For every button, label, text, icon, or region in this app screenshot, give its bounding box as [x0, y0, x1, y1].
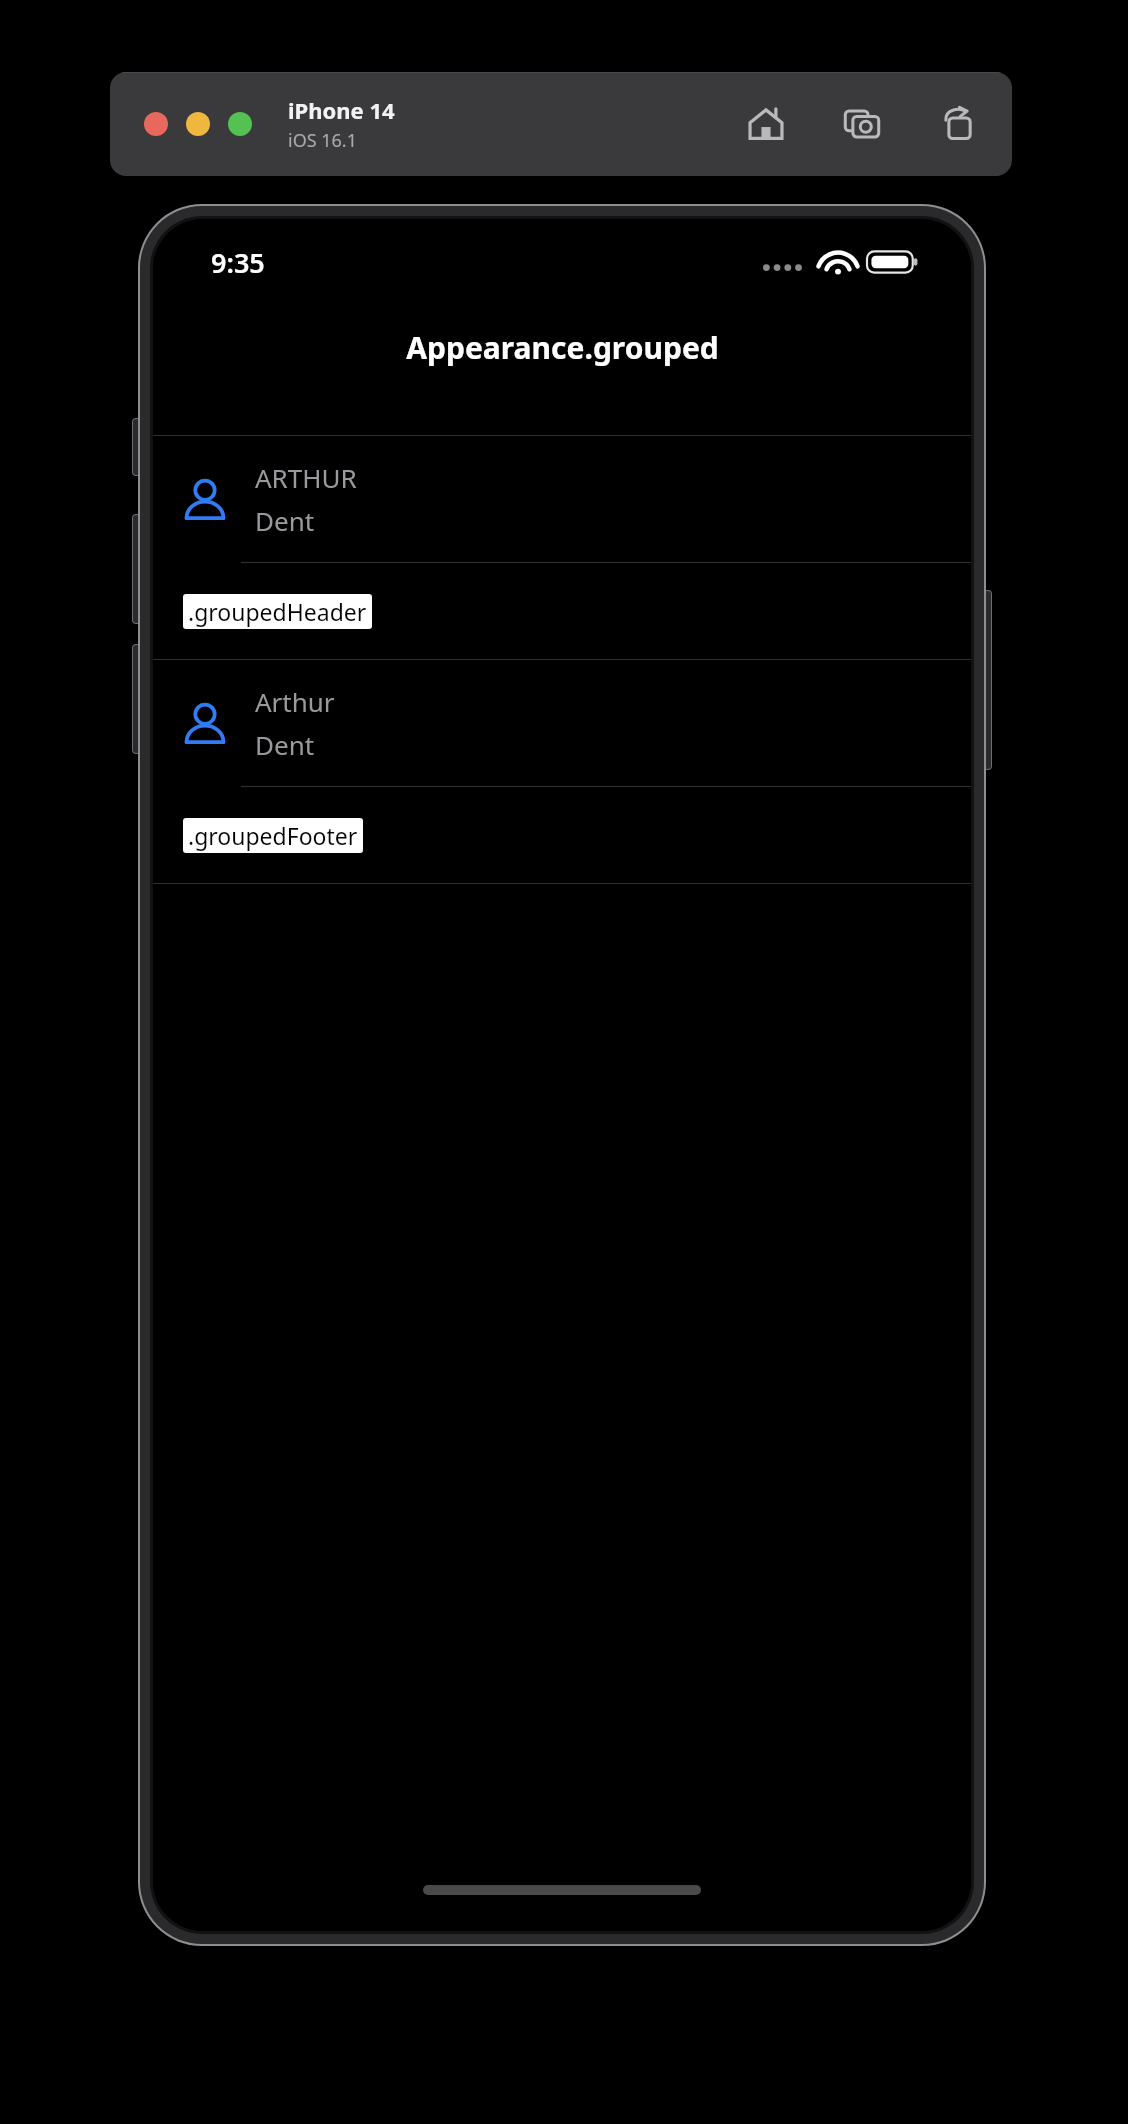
button[interactable]: .groupedFooter	[183, 818, 363, 853]
staticText: Dent	[255, 503, 315, 538]
staticText: Arthur	[255, 684, 335, 719]
button[interactable]: Arthur	[153, 660, 971, 786]
staticText: iOS 16.1	[288, 128, 357, 153]
button[interactable]: Screenshot	[836, 98, 888, 150]
staticText: .groupedHeader	[188, 596, 367, 627]
button[interactable]: Record screen	[932, 98, 984, 150]
button[interactable]: ARTHUR	[153, 436, 971, 562]
staticText: Dent	[255, 727, 315, 762]
staticText: 9:35	[211, 244, 265, 281]
staticText: iPhone 14	[288, 95, 395, 125]
button[interactable]: Zoom	[228, 112, 252, 136]
button[interactable]: Close	[144, 112, 168, 136]
button[interactable]: .groupedHeader	[183, 594, 372, 629]
button[interactable]: Home	[740, 98, 792, 150]
staticText: Appearance.grouped	[406, 327, 719, 368]
staticText: ARTHUR	[255, 460, 357, 495]
button[interactable]: Minimise	[186, 112, 210, 136]
staticText: .groupedFooter	[188, 820, 358, 851]
